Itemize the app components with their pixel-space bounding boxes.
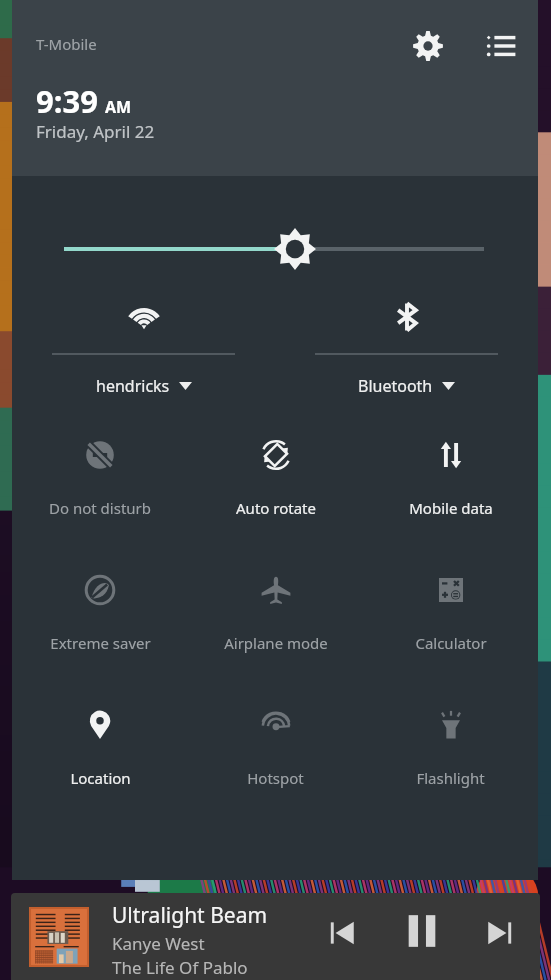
staticText: Airplane mode [224, 633, 328, 653]
staticText: hendricks [96, 375, 170, 397]
staticText: AM [105, 96, 132, 118]
button[interactable]: Calculator [363, 549, 538, 684]
staticText: Bluetooth [358, 375, 433, 397]
button[interactable]: Next [472, 905, 528, 961]
button[interactable]: Brightness [12, 220, 538, 278]
staticText: Friday, April 22 [36, 120, 155, 143]
button[interactable]: Ultralight Beam [11, 893, 540, 980]
staticText: Kanye West [112, 932, 205, 955]
staticText: Hotspot [247, 768, 304, 788]
staticText: Mobile data [409, 498, 493, 518]
button[interactable]: hendricks [12, 280, 275, 404]
button[interactable]: Bluetooth [275, 280, 538, 404]
button[interactable]: Pause [392, 901, 452, 961]
button[interactable]: Location [12, 684, 188, 819]
button[interactable]: Mobile data [363, 414, 538, 549]
staticText: Location [70, 768, 131, 788]
staticText: Extreme saver [50, 633, 151, 653]
button[interactable]: Flashlight [363, 684, 538, 819]
button[interactable]: Hotspot [188, 684, 363, 819]
button[interactable]: Extreme saver [12, 549, 188, 684]
button[interactable]: Auto rotate [188, 414, 363, 549]
staticText: 9:39 [36, 80, 98, 122]
staticText: Do not disturb [49, 498, 151, 518]
button[interactable]: Airplane mode [188, 549, 363, 684]
button[interactable]: Do not disturb [12, 414, 188, 549]
staticText: Auto rotate [236, 498, 316, 518]
staticText: Ultralight Beam [112, 901, 268, 930]
button[interactable]: Settings [400, 18, 456, 74]
staticText: Calculator [415, 633, 487, 653]
staticText: Flashlight [416, 768, 485, 788]
button[interactable]: Previous [314, 905, 370, 961]
button[interactable]: Notification list [473, 18, 529, 74]
staticText: The Life Of Pablo [112, 956, 248, 979]
staticText: T-Mobile [36, 34, 97, 54]
